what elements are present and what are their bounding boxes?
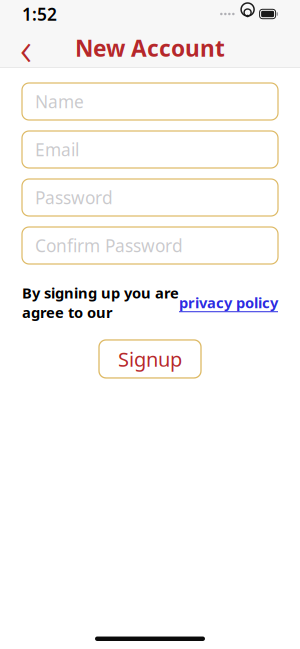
staticText: ‹ [20,18,32,78]
staticText: Signup [118,346,182,372]
staticText: Password [35,186,113,209]
staticText: New Account [75,33,225,63]
button[interactable]: Email [22,131,278,168]
button[interactable]: Confirm Password [22,227,278,264]
staticText: Confirm Password [35,234,183,257]
button[interactable]: privacy policy [179,293,278,312]
button[interactable]: Signup [99,340,201,378]
button[interactable]: Back [8,28,44,68]
staticText: 1:52 [22,2,57,25]
staticText: By signing up you are agree to our [22,283,179,322]
staticText: Name [35,90,84,113]
button[interactable]: Password [22,179,278,216]
button[interactable]: Name [22,83,278,120]
staticText: privacy policy [179,293,278,312]
staticText: Email [35,138,79,161]
